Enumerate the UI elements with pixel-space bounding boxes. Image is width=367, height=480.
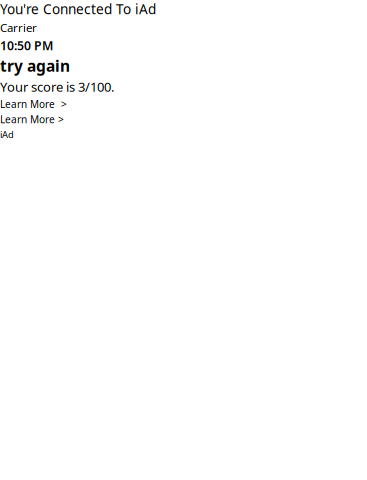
staticText: iAd — [0, 128, 14, 140]
staticText: Your score is 3/100. — [0, 78, 114, 95]
staticText: 10:50 PM — [0, 37, 53, 54]
staticText: Carrier — [0, 20, 37, 35]
staticText: try again — [0, 56, 70, 76]
staticText: You're Connected To iAd — [0, 0, 156, 18]
staticText: Learn More > — [0, 97, 67, 111]
staticText: Learn More > — [0, 113, 64, 126]
